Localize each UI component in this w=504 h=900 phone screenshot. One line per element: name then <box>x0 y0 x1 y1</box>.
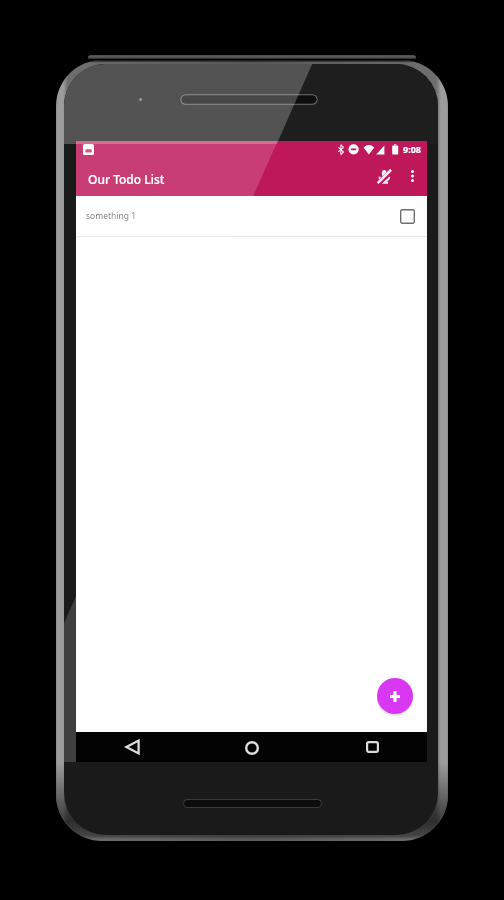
staticText: something 1 <box>86 210 137 222</box>
button[interactable]: More options <box>398 160 427 192</box>
staticText: 9:08 <box>403 143 421 155</box>
button[interactable]: something 1 <box>76 196 427 236</box>
staticText: Our Todo List <box>88 171 165 187</box>
button[interactable]: Add todo <box>377 678 413 714</box>
button[interactable]: Recents <box>357 732 387 762</box>
button[interactable]: Voice input off <box>368 160 400 192</box>
button[interactable]: Home <box>237 733 267 763</box>
button[interactable]: Back <box>117 732 147 762</box>
